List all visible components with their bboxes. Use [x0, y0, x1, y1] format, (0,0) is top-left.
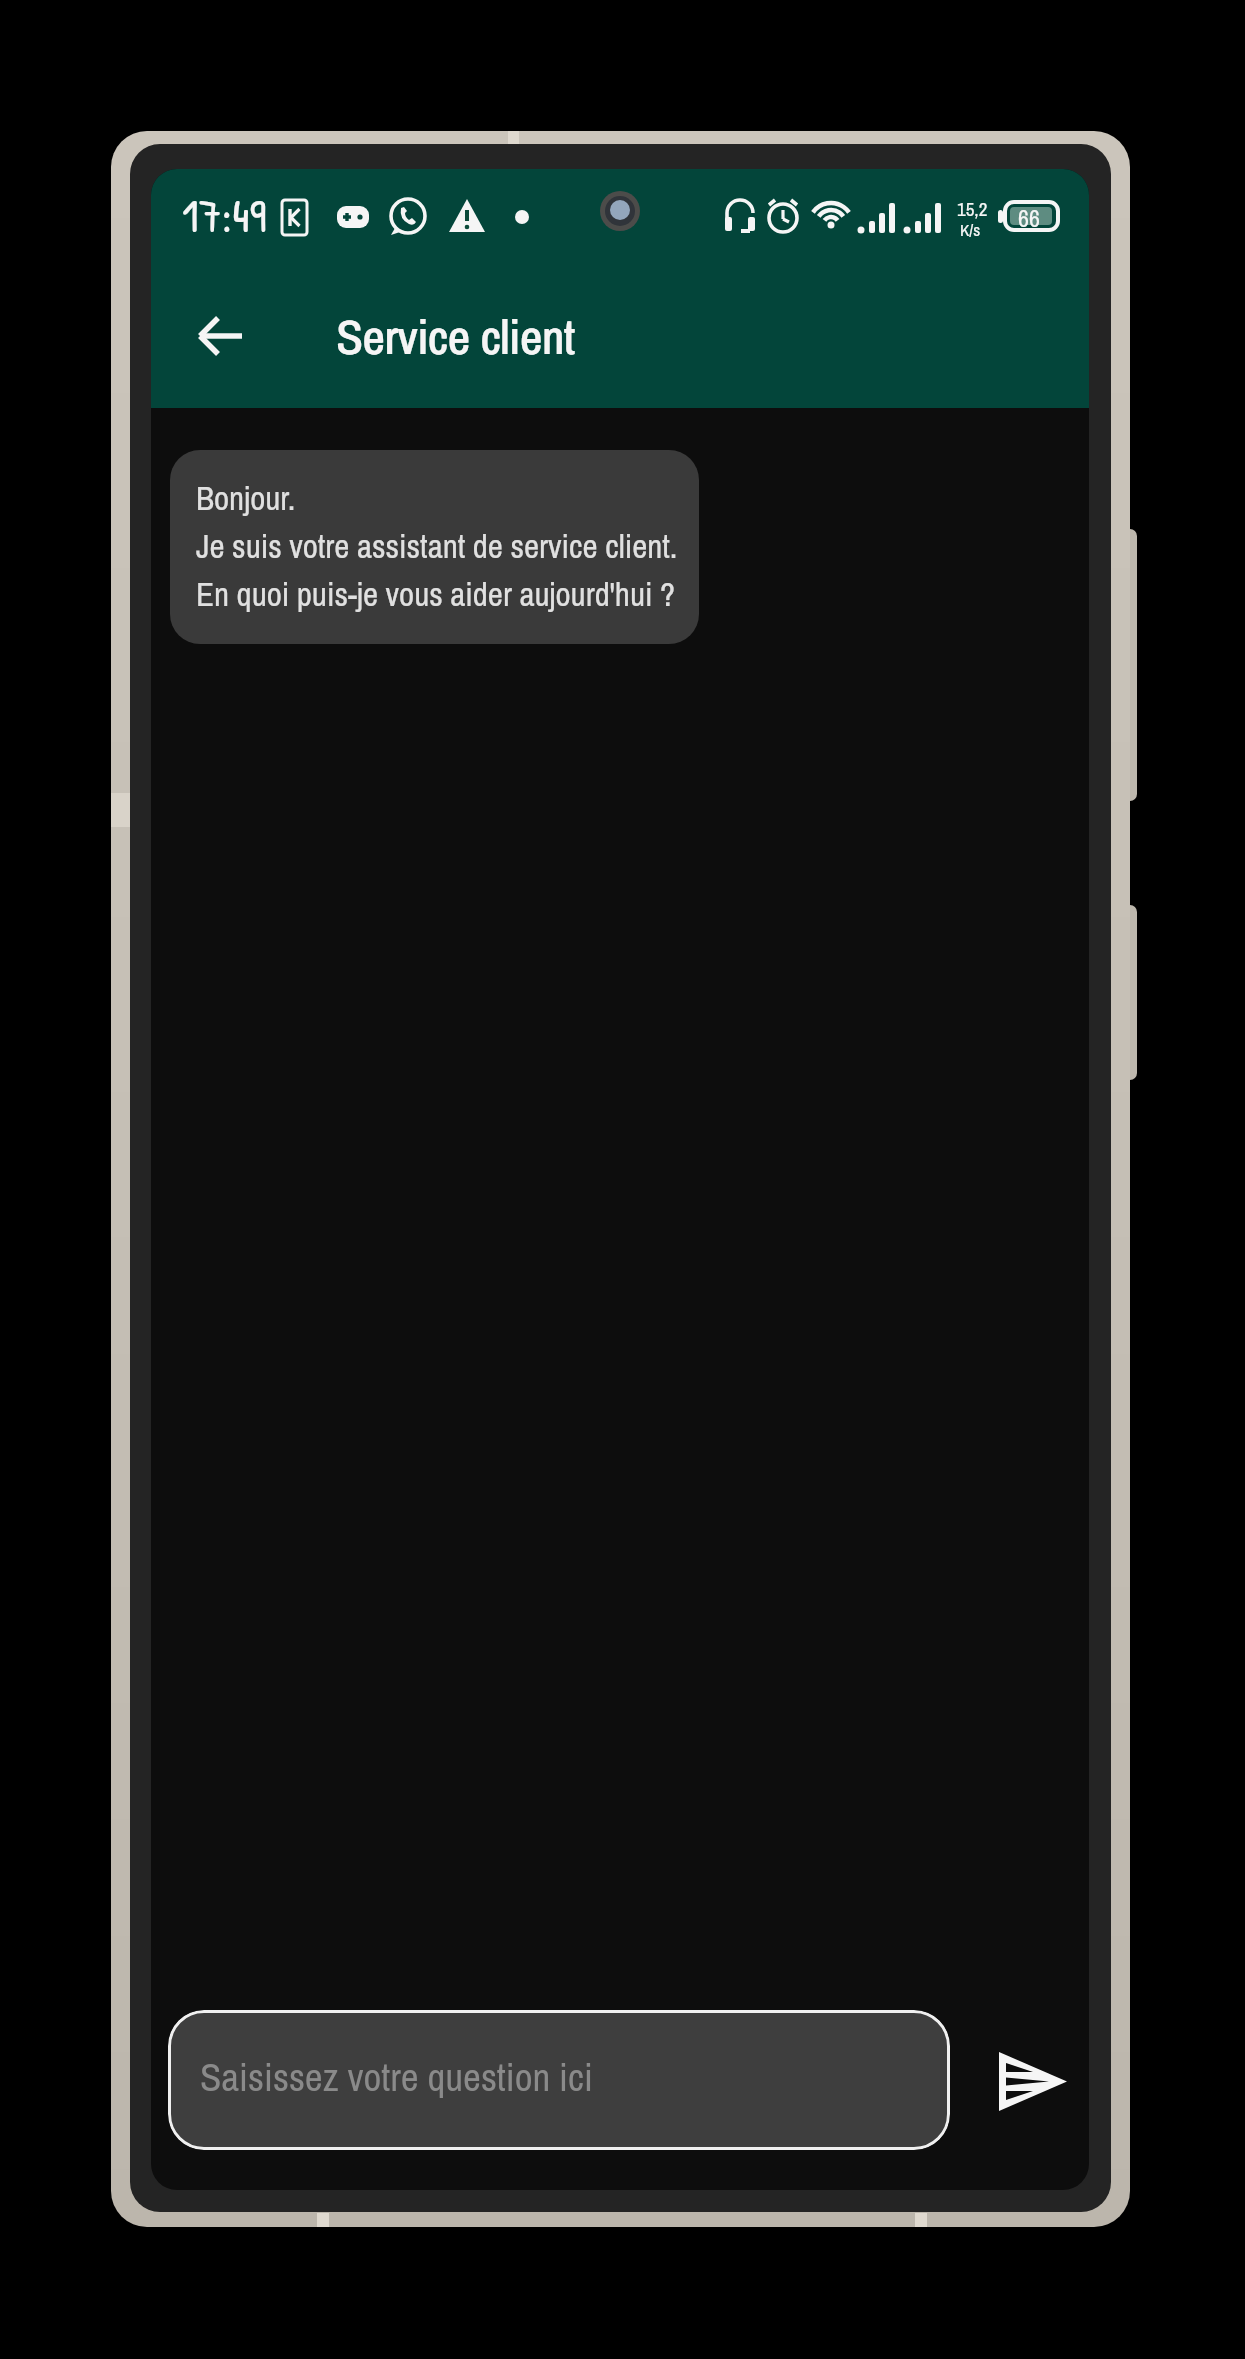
staticText: 15,2 — [957, 196, 988, 222]
button[interactable]: Saisissez votre question ici — [168, 2010, 950, 2150]
staticText: Service client — [336, 304, 575, 369]
staticText: 17:49 — [182, 184, 267, 246]
button[interactable] — [987, 2039, 1079, 2123]
staticText: K/s — [960, 218, 981, 241]
staticText: Saisissez votre question ici — [200, 2051, 593, 2104]
staticText: Service client — [337, 304, 576, 369]
staticText: 66 — [1018, 202, 1040, 234]
button[interactable] — [187, 302, 255, 370]
staticText: Bonjour. Je suis votre assistant de serv… — [196, 476, 678, 617]
